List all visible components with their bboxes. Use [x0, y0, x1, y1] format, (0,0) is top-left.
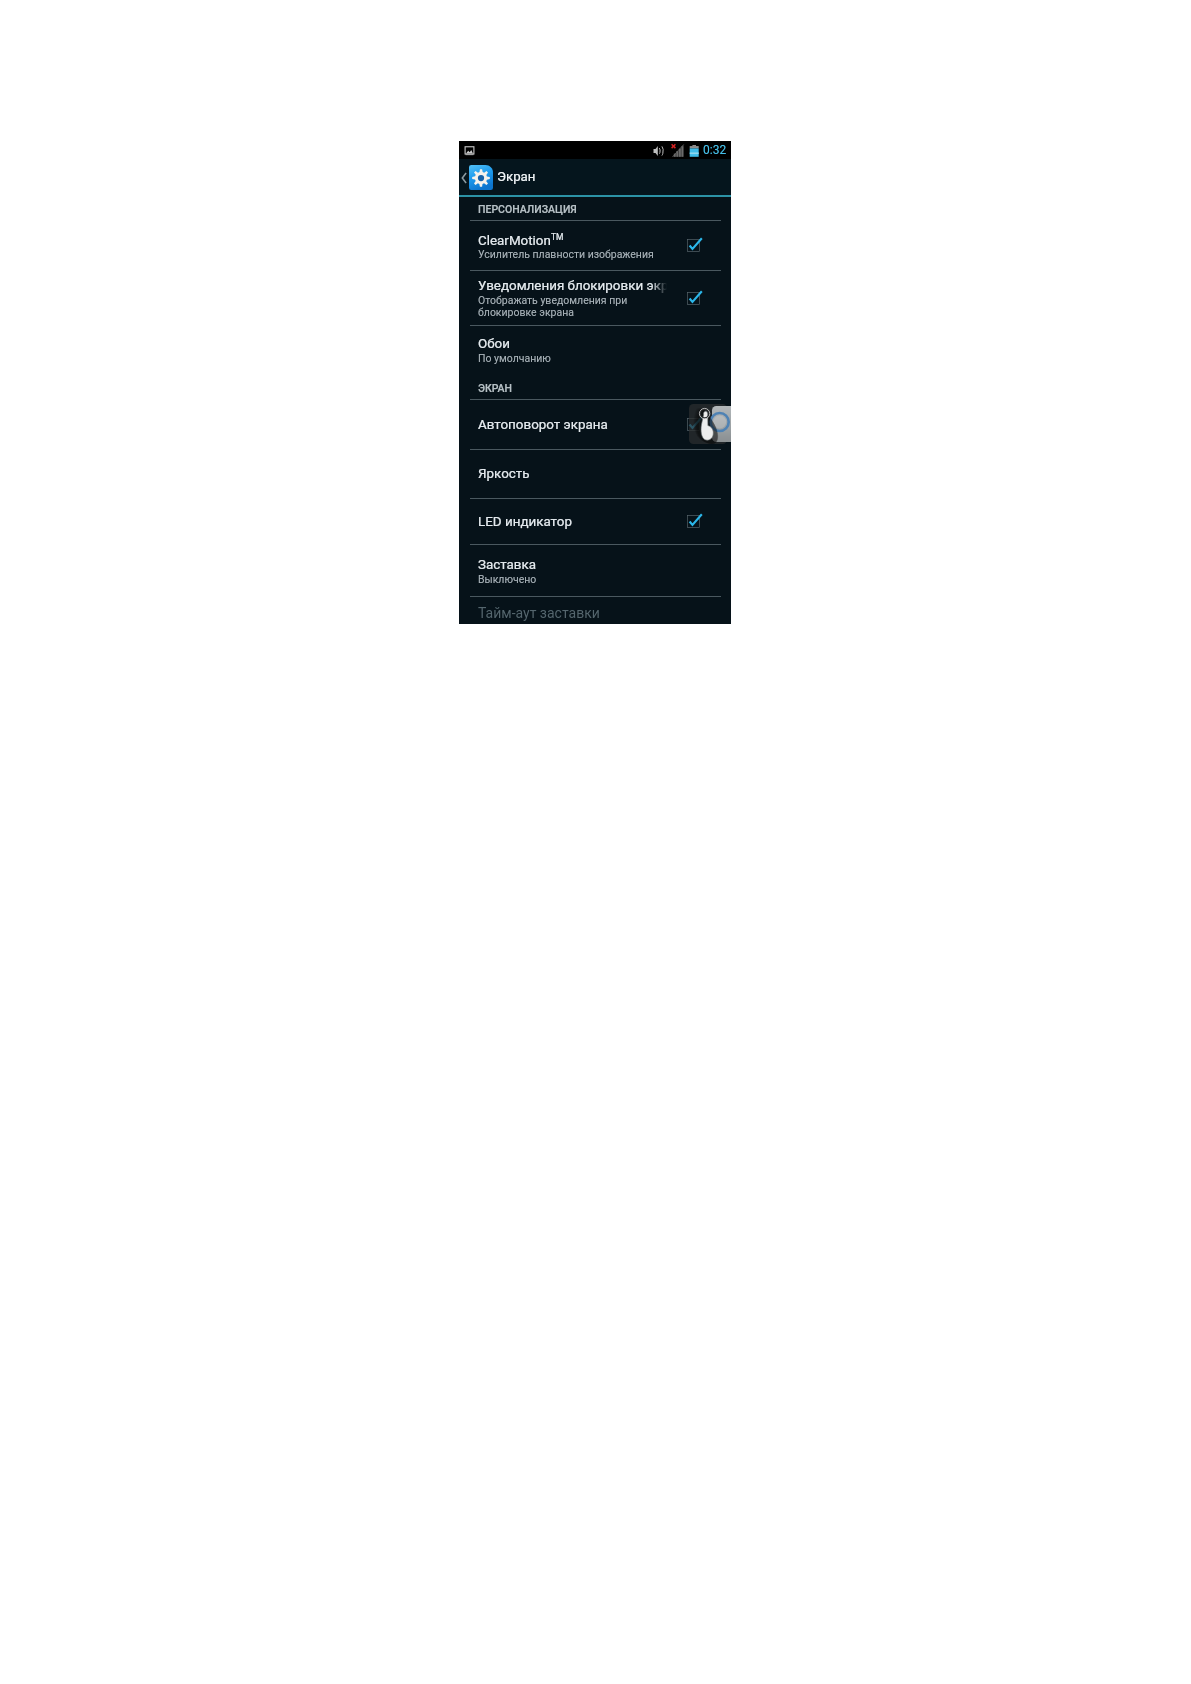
- button[interactable]: LED индикатор: [459, 499, 731, 544]
- button[interactable]: Toggle Уведомления блокировки экрана: [687, 292, 700, 305]
- staticText: Отображать уведомления при блокировке эк…: [478, 294, 628, 318]
- button[interactable]: Toggle LED индикатор: [687, 515, 700, 528]
- staticText: Усилитель плавности изображения: [478, 248, 654, 260]
- staticText: Тайм-аут заставки: [478, 605, 600, 621]
- staticText: Яркость: [478, 466, 530, 482]
- staticText: 0:32: [703, 143, 727, 157]
- staticText: Экран: [497, 169, 536, 185]
- button[interactable]: Toggle ClearMotion: [687, 239, 700, 252]
- button[interactable]: Navigate up: [459, 165, 495, 190]
- staticText: Обои: [478, 336, 510, 352]
- staticText: Автоповорот экрана: [478, 417, 608, 433]
- staticText: LED индикатор: [478, 514, 572, 530]
- staticText: Заставка: [478, 557, 537, 573]
- button[interactable]: Уведомления блокировки экрана: [459, 271, 731, 325]
- button[interactable]: Тайм-аут заставки: [459, 597, 731, 624]
- other: Screenshot captured: [464, 145, 475, 156]
- button[interactable]: ClearMotionTM: [459, 221, 731, 270]
- staticText: Выключено: [478, 573, 537, 585]
- staticText: По умолчанию: [478, 352, 551, 364]
- other: Touch pointer: [689, 404, 731, 444]
- button[interactable]: Автоповорот экрана: [459, 400, 731, 449]
- button[interactable]: Toggle Автоповорот экрана: [687, 418, 700, 431]
- staticText: ПЕРСОНАЛИЗАЦИЯ: [478, 203, 577, 215]
- staticText: ЭКРАН: [478, 382, 513, 394]
- button[interactable]: Яркость: [459, 450, 731, 498]
- staticText: Уведомления блокировки экрана: [478, 278, 667, 294]
- staticText: ClearMotionTM: [478, 232, 564, 248]
- button[interactable]: Заставка: [459, 545, 731, 596]
- other: Sound, no signal, battery: [459, 141, 731, 159]
- button[interactable]: Обои: [459, 326, 731, 373]
